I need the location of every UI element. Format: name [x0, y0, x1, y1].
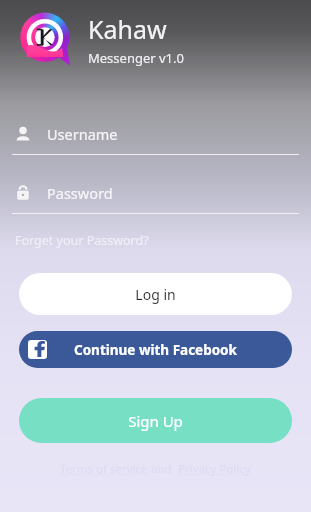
staticText: Sign Up	[128, 411, 183, 431]
button[interactable]: Log in	[19, 273, 292, 315]
staticText: Password	[47, 183, 113, 203]
button[interactable]: Username	[15, 122, 311, 146]
button[interactable]: Forget your Password?	[15, 232, 149, 249]
staticText: Kahaw	[88, 12, 167, 46]
other: Username	[15, 126, 31, 142]
button[interactable]: Password	[15, 181, 311, 205]
staticText: Username	[47, 124, 118, 144]
other: Kahaw logo	[18, 12, 74, 68]
staticText: Log in	[135, 285, 176, 304]
other: Password	[15, 185, 31, 201]
staticText: Messenger v1.0	[88, 49, 184, 67]
button[interactable]: Sign Up	[19, 398, 292, 443]
staticText: Continue with Facebook	[74, 341, 237, 359]
button[interactable]: Continue with Facebook	[19, 331, 292, 368]
